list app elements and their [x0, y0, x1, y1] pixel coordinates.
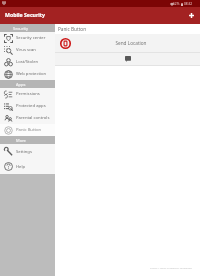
staticText: Panic Button [58, 26, 87, 32]
button[interactable]: Web protection [0, 68, 55, 80]
staticText: Apps [16, 82, 26, 87]
button[interactable]: Send message [55, 53, 200, 65]
staticText: Mobile Security [5, 11, 46, 18]
staticText: Panic Button [16, 127, 42, 133]
staticText: Virus scan [16, 47, 36, 53]
staticText: Parental controls [16, 115, 50, 121]
staticText: Lost/Stolen [16, 59, 39, 65]
staticText: Web protection [16, 71, 47, 77]
button[interactable]: Protected apps [0, 100, 55, 112]
staticText: G DATA | TRUST IN GERMAN SICHERHEIT [150, 267, 192, 270]
staticText: Settings [16, 149, 32, 155]
button[interactable]: Permissions [0, 88, 55, 100]
button[interactable]: Virus scan [0, 44, 55, 56]
button[interactable]: Parental controls [0, 112, 55, 124]
staticText: Protected apps [16, 103, 46, 109]
button[interactable]: Lost/Stolen [0, 56, 55, 68]
staticText: Security [13, 26, 29, 31]
staticText: 08:32 [184, 2, 193, 6]
staticText: More [16, 138, 26, 143]
staticText: Help [16, 164, 26, 170]
button[interactable]: Panic Button [0, 124, 55, 136]
staticText: Security center [16, 35, 46, 41]
button[interactable]: Security center [0, 32, 55, 44]
staticText: Send Location [115, 40, 147, 46]
button[interactable]: Help [0, 159, 55, 174]
button[interactable]: Settings [0, 144, 55, 159]
staticText: 62% [173, 2, 180, 6]
button[interactable]: Add [185, 9, 197, 21]
button[interactable]: Send Location [55, 34, 200, 52]
staticText: Permissions [16, 91, 40, 97]
